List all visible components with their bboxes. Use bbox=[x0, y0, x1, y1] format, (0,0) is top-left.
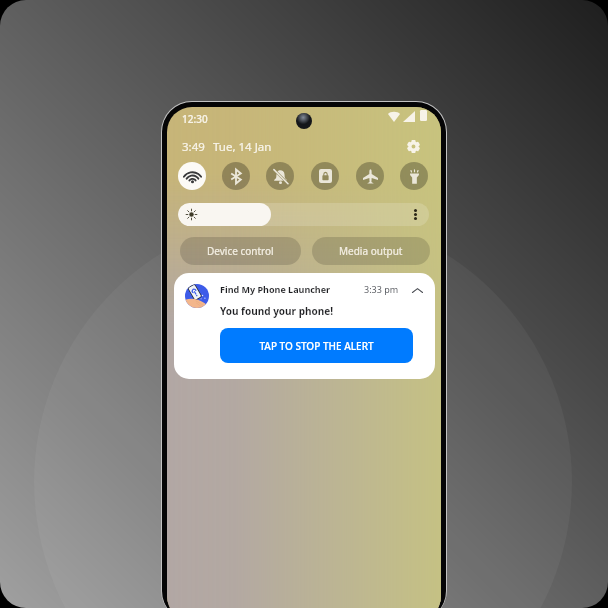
button[interactable]: Wi-Fi bbox=[178, 162, 206, 190]
staticText: Media output bbox=[339, 244, 403, 258]
staticText: You found your phone! bbox=[220, 304, 334, 318]
staticText: Find My Phone Launcher bbox=[220, 283, 331, 295]
button[interactable]: TAP TO STOP THE ALERT bbox=[220, 328, 413, 363]
button[interactable]: Media output bbox=[312, 237, 430, 265]
staticText: Device control bbox=[207, 244, 274, 258]
button[interactable]: Open brightness settings bbox=[408, 203, 422, 226]
button[interactable]: Airplane mode bbox=[356, 162, 384, 190]
staticText: TAP TO STOP THE ALERT bbox=[259, 339, 374, 353]
staticText: Tue, 14 Jan bbox=[213, 139, 272, 155]
staticText: 3:49 bbox=[182, 139, 205, 155]
button[interactable]: Screen lock bbox=[311, 162, 339, 190]
staticText: 12:30 bbox=[182, 112, 208, 126]
button[interactable]: Brightness bbox=[178, 203, 429, 226]
button[interactable]: Settings bbox=[403, 136, 423, 156]
button[interactable]: Collapse notification bbox=[410, 283, 425, 298]
button[interactable]: Ring mode bbox=[266, 162, 294, 190]
button[interactable]: Bluetooth bbox=[222, 162, 250, 190]
staticText: 3:33 pm bbox=[364, 283, 399, 295]
button[interactable]: Find My Phone Launcher bbox=[174, 273, 435, 379]
button[interactable]: Flashlight bbox=[400, 162, 428, 190]
button[interactable]: Device control bbox=[180, 237, 301, 265]
